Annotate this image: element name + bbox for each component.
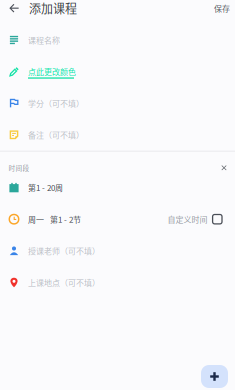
button[interactable]: 学分（可不填）: [0, 87, 235, 119]
staticText: 上课地点（可不填）: [28, 277, 100, 288]
button[interactable]: 上课地点（可不填）: [0, 267, 235, 298]
staticText: 第1 - 20周: [28, 182, 63, 193]
staticText: 周一: [28, 213, 44, 225]
staticText: 保存: [214, 2, 230, 14]
staticText: 点此更改颜色: [28, 66, 76, 77]
button[interactable]: 第1 - 20周: [0, 172, 235, 203]
staticText: 第1 - 2节: [50, 213, 81, 225]
button[interactable]: 课程名称: [0, 24, 235, 56]
staticText: 课程名称: [28, 34, 60, 46]
button[interactable]: 自定义时间: [168, 203, 235, 235]
staticText: 备注（可不填）: [28, 129, 84, 141]
staticText: 授课老师（可不填）: [28, 245, 100, 257]
button[interactable]: 保存: [209, 0, 235, 16]
staticText: 添加课程: [29, 0, 77, 17]
button[interactable]: Add: [201, 365, 228, 388]
staticText: 自定义时间: [168, 213, 208, 225]
button[interactable]: 授课老师（可不填）: [0, 235, 235, 267]
button[interactable]: 点此更改颜色: [0, 56, 235, 87]
button[interactable]: 周一: [0, 203, 81, 235]
button[interactable]: Close: [215, 159, 233, 177]
button[interactable]: 备注（可不填）: [0, 119, 235, 151]
staticText: 时间段: [8, 163, 29, 173]
staticText: 学分（可不填）: [28, 97, 84, 109]
button[interactable]: Back: [3, 0, 25, 17]
